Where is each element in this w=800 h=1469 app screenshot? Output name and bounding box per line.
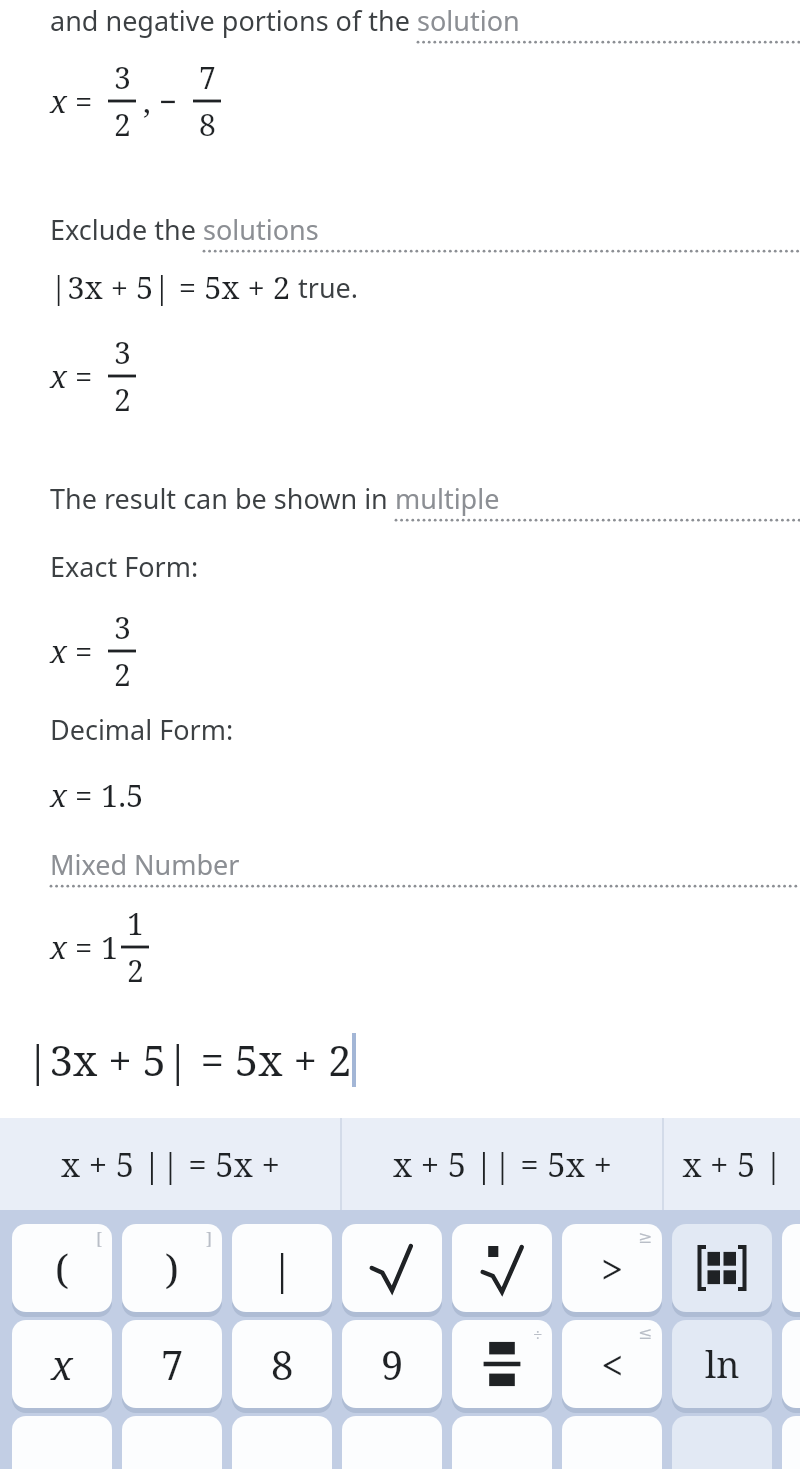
button[interactable] [782, 1320, 800, 1408]
staticText: x [51, 1337, 73, 1391]
staticText: ln [705, 1340, 740, 1389]
button[interactable] [232, 1416, 332, 1469]
button[interactable]: Nth root [452, 1224, 552, 1312]
staticText: 3 [114, 57, 131, 98]
staticText: ) [165, 1241, 179, 1295]
button[interactable]: x + 5 | [664, 1118, 800, 1210]
button[interactable]: ( [12, 1224, 112, 1312]
staticText: solutions [203, 211, 319, 248]
staticText: x [50, 355, 67, 397]
staticText: 9 [381, 1337, 404, 1391]
staticText: 7 [161, 1337, 184, 1391]
button[interactable]: | [232, 1224, 332, 1312]
staticText: 2 [127, 950, 144, 991]
staticText: Decimal Form: [50, 711, 234, 748]
staticText: x + 5 | [682, 1142, 783, 1187]
staticText: 8 [271, 1337, 294, 1391]
button[interactable]: x [12, 1320, 112, 1408]
staticText: 2 [114, 379, 131, 420]
button[interactable]: > [562, 1224, 662, 1312]
button[interactable] [672, 1416, 772, 1469]
button[interactable]: 7 [122, 1320, 222, 1408]
button[interactable] [122, 1416, 222, 1469]
button[interactable] [562, 1416, 662, 1469]
button[interactable]: ln [672, 1320, 772, 1408]
button[interactable]: |3x + 5| = 5x + 2 [0, 1000, 800, 1118]
staticText: 2 [114, 104, 131, 145]
staticText: true. [291, 269, 359, 306]
staticText: 1 [101, 926, 119, 968]
staticText: |3x + 5| = 5x + 2 [50, 266, 291, 308]
staticText: x [50, 80, 67, 122]
staticText: 1 [127, 903, 144, 944]
staticText: Exact Form: [50, 548, 199, 585]
button[interactable]: x + 5 || = 5x + [0, 1118, 340, 1210]
button[interactable]: ) [122, 1224, 222, 1312]
button[interactable] [452, 1416, 552, 1469]
staticText: ÷ [533, 1323, 543, 1346]
button[interactable]: Matrix [672, 1224, 772, 1312]
button[interactable]: < [562, 1320, 662, 1408]
button[interactable] [782, 1416, 800, 1469]
staticText: [ [96, 1227, 103, 1250]
staticText: 3 [114, 332, 131, 373]
staticText: − [151, 80, 186, 122]
staticText: = [67, 630, 101, 672]
staticText: = [67, 355, 101, 397]
button[interactable] [12, 1416, 112, 1469]
staticText: 7 [199, 57, 216, 98]
staticText: The result can be shown in [50, 480, 395, 517]
staticText: ] [206, 1227, 213, 1250]
staticText: x [50, 630, 67, 672]
staticText: | [271, 1241, 294, 1295]
staticText: , [143, 80, 151, 122]
staticText: x + 5 || = 5x + [61, 1142, 280, 1187]
staticText: solution [417, 2, 520, 39]
staticText: Exclude the [50, 211, 203, 248]
button[interactable] [342, 1416, 442, 1469]
staticText: x [50, 926, 67, 968]
button[interactable]: Fraction [452, 1320, 552, 1408]
staticText: > [601, 1241, 624, 1295]
staticText: 8 [199, 104, 216, 145]
button[interactable]: x + 5 || = 5x + [342, 1118, 662, 1210]
staticText: < [601, 1337, 624, 1391]
staticText: = [67, 80, 101, 122]
staticText: and negative portions of the [50, 2, 417, 39]
staticText: 1.5 [101, 774, 144, 816]
staticText: Mixed Number [50, 846, 240, 883]
staticText: ( [55, 1241, 69, 1295]
staticText: ≤ [638, 1323, 653, 1343]
staticText: x [50, 774, 67, 816]
staticText: 2 [114, 654, 131, 695]
button[interactable]: 9 [342, 1320, 442, 1408]
staticText: 3 [114, 607, 131, 648]
staticText: = [67, 926, 101, 968]
button[interactable]: 8 [232, 1320, 332, 1408]
staticText: = [67, 774, 101, 816]
staticText: x + 5 || = 5x + [393, 1142, 612, 1187]
button[interactable]: Square root [342, 1224, 442, 1312]
staticText: multiple [395, 480, 500, 517]
button[interactable] [782, 1224, 800, 1312]
staticText: |3x + 5| = 5x + 2 [26, 1031, 352, 1088]
staticText: ≥ [638, 1227, 653, 1247]
